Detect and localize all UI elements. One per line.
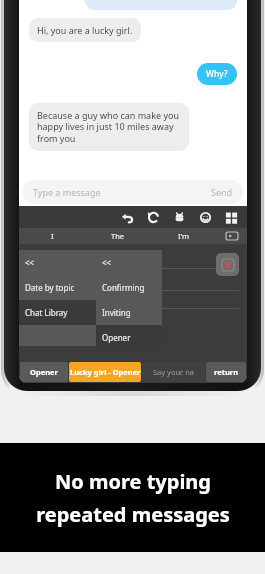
button[interactable]: Type a message bbox=[23, 180, 243, 204]
button[interactable]: Emoji bbox=[198, 210, 213, 225]
button[interactable]: Undo bbox=[120, 210, 135, 225]
staticText: Lucky girl - Opener bbox=[70, 367, 141, 377]
staticText: Send bbox=[211, 186, 233, 198]
staticText: << bbox=[25, 257, 35, 268]
button[interactable]: << bbox=[19, 250, 96, 275]
staticText: Say your na bbox=[153, 367, 194, 377]
staticText: Type a message bbox=[33, 186, 101, 198]
staticText: Date by topic bbox=[25, 282, 75, 293]
button[interactable]: << bbox=[96, 250, 162, 275]
button[interactable]: Keyboard settings bbox=[217, 228, 247, 244]
staticText: << bbox=[102, 257, 112, 268]
staticText: Hi, you are a lucky girl. bbox=[37, 24, 133, 36]
staticText: Why? bbox=[206, 68, 228, 80]
staticText: Because a guy who can make you happy liv… bbox=[37, 109, 181, 145]
button[interactable]: Opener bbox=[20, 362, 68, 382]
staticText: return bbox=[214, 367, 239, 377]
staticText: repeated messages bbox=[36, 501, 230, 528]
button[interactable]: Inviting bbox=[96, 300, 162, 325]
button[interactable]: I bbox=[19, 228, 85, 244]
button[interactable]: Opener bbox=[96, 325, 162, 350]
button[interactable]: Confirming bbox=[96, 275, 162, 300]
button[interactable]: The bbox=[85, 228, 151, 244]
button[interactable]: Because a guy who can make you happy liv… bbox=[29, 103, 189, 151]
button[interactable]: Android bbox=[172, 210, 187, 225]
staticText: I bbox=[51, 231, 54, 241]
button[interactable]: Date by topic bbox=[19, 275, 96, 300]
staticText: Chat Libray bbox=[25, 307, 68, 318]
button[interactable]: Why? bbox=[197, 63, 237, 85]
button[interactable]: return bbox=[206, 362, 246, 382]
button[interactable]: Lucky girl - Opener bbox=[69, 362, 141, 382]
button[interactable]: Hi, you are a lucky girl. bbox=[29, 18, 141, 42]
button[interactable]: Apps bbox=[224, 210, 239, 225]
staticText: The bbox=[111, 231, 125, 241]
button[interactable]: History bbox=[146, 210, 161, 225]
staticText: Opener bbox=[102, 332, 131, 343]
button[interactable]: Close bbox=[216, 253, 239, 276]
button[interactable]: I'm bbox=[151, 228, 217, 244]
staticText: I'm bbox=[178, 231, 190, 241]
staticText: Opener bbox=[30, 367, 58, 377]
staticText: No more typing bbox=[55, 468, 211, 495]
staticText: Confirming bbox=[102, 282, 145, 293]
button[interactable]: Say your na bbox=[142, 362, 205, 382]
staticText: Inviting bbox=[102, 307, 131, 318]
button[interactable]: Chat Libray bbox=[19, 300, 96, 325]
